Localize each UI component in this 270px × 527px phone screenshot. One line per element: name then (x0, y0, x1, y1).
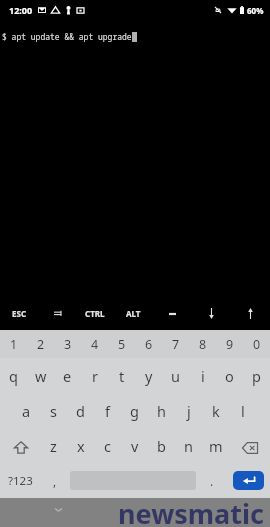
button[interactable]: u (162, 358, 189, 393)
button[interactable]: d (67, 393, 94, 428)
staticText: m (209, 436, 223, 456)
staticText: $ apt update && apt upgrade (2, 31, 132, 42)
button[interactable]: Arrow down (192, 297, 231, 330)
staticText: 6 (145, 336, 153, 353)
button[interactable]: f (94, 393, 121, 428)
button[interactable]: 7 (162, 330, 189, 358)
button[interactable]: q (0, 358, 27, 393)
button[interactable]: w (27, 358, 54, 393)
button[interactable]: Minus (153, 297, 192, 330)
button[interactable]: m (202, 428, 229, 463)
button[interactable]: Tab (38, 297, 76, 330)
button[interactable]: r (81, 358, 108, 393)
button[interactable]: ESC (0, 297, 38, 330)
button[interactable]: 2 (27, 330, 54, 358)
staticText: newsmatic (118, 495, 265, 524)
staticText: v (131, 436, 139, 456)
staticText: h (157, 401, 166, 421)
staticText: 9 (226, 336, 234, 353)
button[interactable]: 5 (108, 330, 135, 358)
button[interactable]: k (202, 393, 229, 428)
staticText: z (50, 436, 57, 456)
staticText: 0 (253, 336, 261, 353)
button[interactable]: , (40, 463, 70, 498)
staticText: j (187, 401, 191, 421)
staticText: x (77, 436, 85, 456)
button[interactable]: z (40, 428, 67, 463)
staticText: . (210, 473, 214, 489)
button[interactable]: Hide keyboard (47, 498, 69, 520)
button[interactable]: j (175, 393, 202, 428)
staticText: a (22, 401, 31, 421)
button[interactable]: e (54, 358, 81, 393)
button[interactable]: 6 (135, 330, 162, 358)
staticText: 2 (37, 336, 45, 353)
button[interactable]: CTRL (76, 297, 114, 330)
button[interactable]: x (67, 428, 94, 463)
staticText: 12:00 (9, 4, 33, 16)
button[interactable]: p (243, 358, 270, 393)
staticText: i (201, 366, 205, 386)
button[interactable]: b (148, 428, 175, 463)
staticText: o (225, 366, 234, 386)
button[interactable]: n (175, 428, 202, 463)
button[interactable]: c (94, 428, 121, 463)
staticText: 7 (172, 336, 180, 353)
staticText: s (50, 401, 57, 421)
staticText: 60% (247, 5, 264, 16)
button[interactable]: 3 (54, 330, 81, 358)
button[interactable]: 8 (189, 330, 216, 358)
button[interactable]: a (13, 393, 40, 428)
button[interactable]: Arrow up (231, 297, 270, 330)
staticText: ALT (126, 308, 141, 319)
button[interactable]: Backspace (229, 428, 270, 463)
button[interactable]: v (121, 428, 148, 463)
staticText: , (53, 473, 57, 489)
staticText: d (76, 401, 85, 421)
staticText: y (145, 366, 153, 386)
button[interactable]: i (189, 358, 216, 393)
staticText: c (104, 436, 111, 456)
staticText: r (92, 366, 98, 386)
staticText: q (9, 366, 18, 386)
button[interactable]: ?123 (0, 463, 40, 498)
staticText: 3 (64, 336, 72, 353)
button[interactable]: s (40, 393, 67, 428)
staticText: w (35, 366, 47, 386)
button[interactable]: o (216, 358, 243, 393)
button[interactable]: 1 (0, 330, 27, 358)
staticText: 1 (10, 336, 18, 353)
button[interactable]: g (121, 393, 148, 428)
button[interactable]: y (135, 358, 162, 393)
staticText: 5 (118, 336, 126, 353)
staticText: 4 (91, 336, 99, 353)
button[interactable]: h (148, 393, 175, 428)
button[interactable]: Enter (233, 471, 264, 490)
staticText: ESC (12, 308, 27, 319)
button[interactable]: 0 (243, 330, 270, 358)
button[interactable]: t (108, 358, 135, 393)
button[interactable]: . (196, 463, 227, 498)
staticText: k (212, 401, 220, 421)
staticText: l (241, 401, 245, 421)
staticText: p (252, 366, 261, 386)
button[interactable]: 4 (81, 330, 108, 358)
button[interactable]: l (229, 393, 256, 428)
staticText: u (171, 366, 180, 386)
staticText: t (119, 366, 125, 386)
staticText: e (63, 366, 72, 386)
staticText: 8 (199, 336, 207, 353)
button[interactable]: Shift (0, 428, 40, 463)
staticText: f (105, 401, 110, 421)
staticText: CTRL (85, 308, 105, 319)
staticText: g (130, 401, 139, 421)
staticText: n (184, 436, 193, 456)
staticText: ?123 (8, 473, 33, 489)
button[interactable]: ALT (114, 297, 153, 330)
staticText: b (157, 436, 166, 456)
button[interactable]: 9 (216, 330, 243, 358)
